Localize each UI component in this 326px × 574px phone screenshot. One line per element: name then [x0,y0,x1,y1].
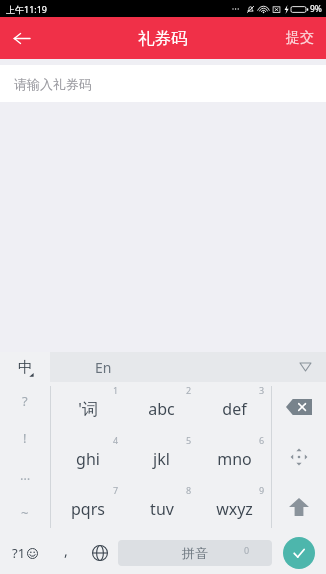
button[interactable]: … [0,456,50,494]
button[interactable]: 4 [51,432,125,482]
button[interactable]: ? [0,382,50,419]
button[interactable]: 2 [125,382,198,432]
staticText: tuv [150,498,174,520]
staticText: 4 [113,434,119,446]
staticText: wxyz [216,498,253,520]
button[interactable]: ~ [0,494,50,532]
button[interactable]: Shift [272,482,326,532]
staticText: 礼券码 [138,28,188,49]
button[interactable]: , [50,532,82,574]
staticText: ? [22,392,28,410]
staticText: 请输入礼券码 [14,76,92,92]
button[interactable]: 7 [51,482,125,532]
staticText: pqrs [71,498,105,520]
button[interactable]: Back [0,17,42,59]
staticText: 中 [18,358,33,377]
staticText: 上午11:19 [6,3,48,15]
button[interactable]: 9 [198,482,271,532]
staticText: En [95,358,112,377]
button[interactable]: ! [0,419,50,456]
staticText: 9% [310,3,322,15]
button[interactable]: Cursor keys [272,432,326,482]
staticText: 9 [259,484,265,496]
staticText: 8 [186,484,192,496]
staticText: 0 [244,544,250,556]
button[interactable]: 8 [125,482,198,532]
staticText: 6 [259,434,265,446]
staticText: 7 [113,484,119,496]
button[interactable]: En [50,352,326,382]
staticText: , [64,541,68,560]
staticText: 3 [259,384,265,396]
staticText: abc [148,398,175,420]
button[interactable]: Switch to Chinese [0,352,50,382]
button[interactable]: Enter [272,532,326,574]
button[interactable]: 3 [198,382,271,432]
staticText: … [20,466,31,484]
staticText: 5 [186,434,192,446]
staticText: mno [217,448,252,470]
staticText: 提交 [286,29,314,47]
button[interactable]: 5 [125,432,198,482]
staticText: jkl [153,448,170,470]
staticText: 1 [113,384,119,396]
button[interactable]: ?1 [0,532,50,574]
button[interactable]: Backspace [272,382,326,432]
staticText: ghi [76,448,100,470]
staticText: ! [23,429,27,447]
staticText: ?1 [12,544,26,562]
button[interactable]: 6 [198,432,271,482]
staticText: ~ [21,504,29,522]
button[interactable]: 1 [51,382,125,432]
button[interactable]: Change keyboard language [82,532,118,574]
button[interactable]: 拼音 [118,540,272,566]
staticText: 拼音 [182,545,208,561]
button[interactable]: 提交 [274,17,326,59]
staticText: '词 [78,398,98,420]
staticText: 2 [186,384,192,396]
staticText: def [222,398,247,420]
button[interactable]: 请输入礼券码 [0,65,326,102]
